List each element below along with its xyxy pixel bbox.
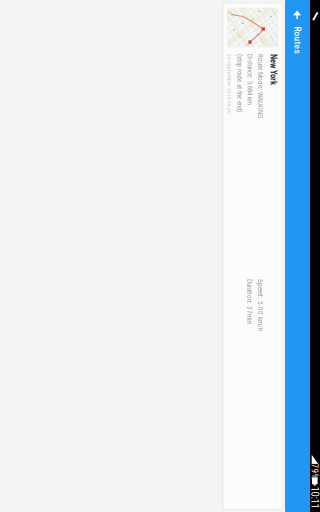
staticText: Speed: 5.00 km/h [183, 151, 235, 160]
button[interactable]: New York [0, 134, 320, 192]
